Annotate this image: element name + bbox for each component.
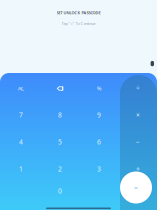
button[interactable]: 4 bbox=[6, 131, 36, 153]
staticText: 4 bbox=[19, 138, 23, 146]
staticText: 5 bbox=[58, 138, 62, 146]
button[interactable]: 7 bbox=[6, 104, 36, 126]
button[interactable]: 5 bbox=[45, 131, 75, 153]
button[interactable]: 3 bbox=[84, 158, 114, 180]
staticText: 1 bbox=[19, 165, 23, 173]
button[interactable]: 8 bbox=[45, 104, 75, 126]
staticText: % bbox=[97, 85, 101, 92]
staticText: 9 bbox=[97, 111, 101, 119]
staticText: 7 bbox=[19, 111, 23, 119]
staticText: 8 bbox=[58, 111, 62, 119]
button[interactable]: × bbox=[123, 104, 153, 126]
staticText: 0 bbox=[58, 187, 62, 195]
staticText: SET UNLOCK PASSCODE bbox=[56, 10, 100, 15]
button[interactable]: % bbox=[84, 77, 114, 99]
staticText: AC bbox=[18, 85, 24, 92]
button[interactable]: − bbox=[123, 131, 153, 153]
button[interactable]: + bbox=[123, 158, 153, 180]
button[interactable]: 1 bbox=[6, 158, 36, 180]
button[interactable]: ÷ bbox=[123, 77, 153, 99]
button[interactable]: More bbox=[151, 61, 154, 66]
staticText: 2 bbox=[58, 165, 62, 173]
staticText: = bbox=[134, 183, 138, 192]
staticText: 6 bbox=[97, 138, 101, 146]
button[interactable]: Delete bbox=[45, 77, 75, 99]
button[interactable]: 9 bbox=[84, 104, 114, 126]
button[interactable]: 2 bbox=[45, 158, 75, 180]
staticText: ÷ bbox=[136, 84, 140, 92]
button[interactable]: AC bbox=[6, 77, 36, 99]
staticText: 3 bbox=[97, 165, 101, 173]
staticText: + bbox=[136, 165, 140, 173]
staticText: × bbox=[136, 111, 140, 119]
button[interactable]: 6 bbox=[84, 131, 114, 153]
button[interactable]: Equals bbox=[120, 171, 152, 203]
staticText: − bbox=[136, 138, 140, 146]
button[interactable]: 0 bbox=[45, 180, 75, 202]
staticText: Tap "=" To Continue bbox=[61, 21, 95, 26]
